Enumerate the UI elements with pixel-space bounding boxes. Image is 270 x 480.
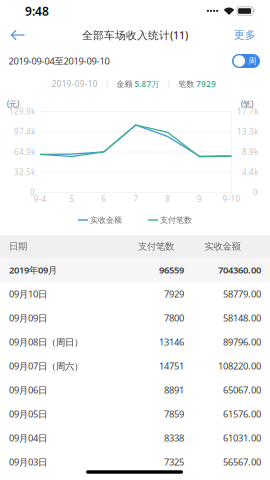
staticText: 9-4	[33, 194, 46, 204]
staticText: 09月10日	[9, 288, 47, 300]
staticText: 7800	[164, 312, 184, 324]
staticText: 58148.00	[223, 312, 261, 324]
staticText: 7929	[164, 288, 184, 300]
staticText: 7859	[164, 408, 184, 420]
staticText: 09月03日	[9, 456, 47, 468]
staticText: 金额	[116, 79, 132, 89]
staticText: 0	[253, 187, 258, 198]
staticText: 09月08日（周日）	[9, 336, 83, 348]
staticText: 8.9k	[242, 147, 258, 157]
staticText: 09月07日（周六）	[9, 360, 83, 372]
staticText: 09月09日	[9, 312, 47, 324]
staticText: (笔)	[241, 99, 253, 109]
staticText: 笔数	[178, 79, 194, 89]
staticText: 129.9k	[9, 106, 35, 117]
staticText: 6	[101, 194, 106, 204]
staticText: 56567.00	[223, 456, 261, 468]
staticText: 2019-09-04至2019-09-10	[8, 55, 109, 67]
staticText: 58779.00	[223, 288, 261, 300]
staticText: 17.7k	[237, 106, 258, 117]
staticText: 8	[165, 194, 170, 204]
staticText: 8891	[164, 384, 184, 396]
staticText: 7325	[164, 456, 184, 468]
staticText: 89796.00	[223, 336, 261, 348]
staticText: 13.3k	[237, 126, 258, 137]
staticText: 支付笔数	[158, 215, 192, 225]
staticText: 0	[30, 187, 35, 198]
staticText: 09月05日	[9, 408, 47, 420]
staticText: 9:48	[25, 3, 49, 19]
staticText: 108220.00	[218, 360, 261, 372]
staticText: 实收金额	[204, 241, 240, 252]
staticText: 实收金额	[88, 215, 122, 225]
button[interactable]: 按周切换	[227, 49, 265, 73]
staticText: 5.87万	[132, 79, 159, 89]
button[interactable]: 返回	[2, 20, 33, 50]
staticText: 09月04日	[9, 432, 47, 444]
staticText: 97.4k	[14, 126, 35, 137]
staticText: 61576.00	[223, 408, 261, 420]
staticText: 13146	[159, 336, 184, 348]
staticText: 支付笔数	[138, 241, 174, 252]
staticText: 2019年09月	[9, 264, 57, 276]
staticText: 32.5k	[14, 167, 35, 177]
staticText: (元)	[7, 99, 19, 109]
staticText: 2019-09-10	[52, 79, 98, 89]
staticText: 4.4k	[242, 167, 258, 177]
staticText: 全部车场收入统计(11)	[82, 28, 188, 42]
staticText: 704360.00	[218, 264, 261, 276]
staticText: 65067.00	[223, 384, 261, 396]
staticText: 5	[69, 194, 74, 204]
staticText: 09月06日	[9, 384, 47, 396]
staticText: 周	[248, 56, 256, 66]
staticText: 61031.00	[223, 432, 261, 444]
staticText: 64.9k	[14, 147, 35, 157]
staticText: 96559	[159, 264, 184, 276]
staticText: 9-10	[222, 194, 240, 204]
staticText: 9	[197, 194, 202, 204]
staticText: 8338	[164, 432, 184, 444]
button[interactable]: 更多	[226, 20, 264, 49]
staticText: 更多	[234, 28, 256, 41]
staticText: 14751	[159, 360, 184, 372]
staticText: 日期	[9, 241, 27, 252]
staticText: 7929	[194, 79, 216, 89]
staticText: 7	[133, 194, 138, 204]
